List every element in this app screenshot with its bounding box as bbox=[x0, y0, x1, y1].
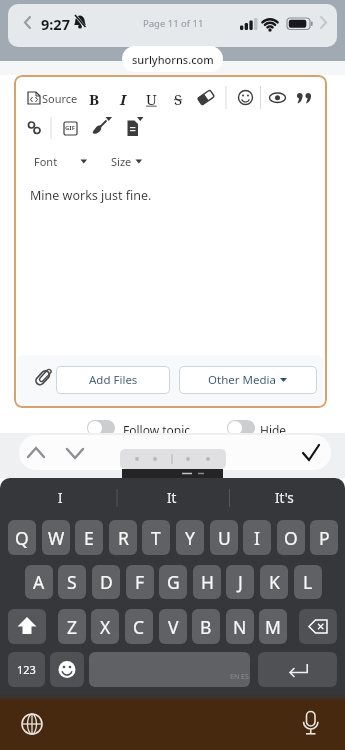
staticText: U bbox=[218, 526, 231, 550]
staticText: 123 bbox=[17, 662, 36, 677]
staticText: B bbox=[200, 615, 212, 639]
button[interactable] bbox=[23, 441, 89, 465]
staticText: Hide bbox=[260, 422, 287, 438]
button[interactable] bbox=[296, 707, 326, 737]
button[interactable]: Z bbox=[58, 609, 86, 644]
staticText: Follow topic bbox=[123, 422, 191, 438]
staticText: 9:27 bbox=[41, 14, 70, 34]
staticText: I bbox=[58, 489, 63, 507]
staticText: Add Files bbox=[89, 372, 138, 388]
button[interactable] bbox=[194, 84, 220, 111]
staticText: R bbox=[118, 526, 129, 550]
staticText: Source bbox=[42, 91, 78, 106]
staticText: It's bbox=[275, 489, 294, 507]
staticText: Other Media bbox=[208, 372, 276, 388]
button[interactable] bbox=[116, 84, 142, 111]
staticText: surlyhorns.com bbox=[132, 52, 214, 67]
staticText: C bbox=[133, 615, 145, 639]
button[interactable]: 123 bbox=[8, 652, 45, 687]
staticText: S bbox=[174, 89, 183, 109]
staticText: L bbox=[303, 570, 313, 594]
staticText: It bbox=[167, 489, 177, 507]
button[interactable]: F bbox=[126, 565, 154, 599]
staticText: Y bbox=[185, 526, 195, 550]
button[interactable]: T bbox=[142, 520, 170, 555]
button[interactable]: J bbox=[226, 565, 254, 599]
button[interactable] bbox=[88, 115, 114, 141]
button[interactable]: Add Files bbox=[56, 366, 170, 394]
staticText: E bbox=[84, 526, 94, 550]
button[interactable]: E bbox=[75, 520, 103, 555]
button[interactable]: R bbox=[109, 520, 137, 555]
button[interactable]: I bbox=[243, 520, 271, 555]
staticText: A bbox=[33, 570, 45, 594]
button[interactable] bbox=[87, 420, 115, 436]
staticText: D bbox=[100, 570, 113, 594]
button[interactable] bbox=[292, 84, 319, 111]
button[interactable]: G bbox=[159, 565, 187, 599]
button[interactable] bbox=[50, 652, 84, 687]
button[interactable] bbox=[17, 709, 47, 739]
button[interactable] bbox=[265, 84, 291, 111]
staticText: Font bbox=[34, 154, 58, 169]
button[interactable]: X bbox=[91, 609, 119, 644]
button[interactable] bbox=[58, 115, 84, 141]
button[interactable]: H bbox=[193, 565, 221, 599]
button[interactable]: P bbox=[310, 520, 338, 555]
staticText: W bbox=[48, 526, 65, 550]
button[interactable] bbox=[258, 652, 337, 687]
button[interactable] bbox=[168, 84, 194, 111]
staticText: G bbox=[167, 570, 180, 594]
button[interactable]: M bbox=[259, 609, 287, 644]
button[interactable] bbox=[295, 439, 327, 467]
staticText: O bbox=[284, 526, 298, 550]
button[interactable]: V bbox=[159, 609, 187, 644]
button[interactable]: EN ES bbox=[89, 652, 250, 687]
staticText: X bbox=[100, 615, 111, 639]
button[interactable] bbox=[8, 609, 46, 644]
button[interactable] bbox=[232, 84, 259, 111]
staticText: M bbox=[265, 615, 281, 639]
button[interactable]: L bbox=[294, 565, 322, 599]
staticText: GIF bbox=[65, 124, 75, 132]
button[interactable] bbox=[299, 609, 337, 644]
staticText: B bbox=[89, 89, 100, 109]
button[interactable] bbox=[24, 115, 50, 141]
staticText: T bbox=[151, 526, 161, 550]
button[interactable]: A bbox=[25, 565, 53, 599]
button[interactable]: B bbox=[192, 609, 220, 644]
staticText: N bbox=[233, 615, 247, 639]
button[interactable]: K bbox=[260, 565, 288, 599]
staticText: H bbox=[201, 570, 214, 594]
button[interactable] bbox=[28, 149, 90, 173]
button[interactable] bbox=[26, 84, 90, 111]
button[interactable]: S bbox=[58, 565, 86, 599]
staticText: Page 11 of 11 bbox=[143, 17, 204, 30]
staticText: Z bbox=[67, 615, 78, 639]
staticText: U bbox=[146, 89, 157, 109]
staticText: P bbox=[319, 526, 330, 550]
button[interactable]: D bbox=[92, 565, 120, 599]
button[interactable]: C bbox=[125, 609, 153, 644]
button[interactable]: surlyhorns.com bbox=[122, 46, 223, 72]
button[interactable] bbox=[227, 420, 255, 436]
staticText: I bbox=[254, 526, 260, 550]
staticText: K bbox=[269, 570, 280, 594]
staticText: Size bbox=[111, 154, 132, 169]
button[interactable] bbox=[122, 115, 148, 141]
button[interactable]: Q bbox=[8, 520, 36, 555]
button[interactable]: O bbox=[277, 520, 305, 555]
staticText: F bbox=[135, 570, 145, 594]
staticText: V bbox=[168, 615, 179, 639]
button[interactable]: W bbox=[42, 520, 70, 555]
staticText: Q bbox=[15, 526, 29, 550]
button[interactable]: N bbox=[226, 609, 254, 644]
button[interactable]: Y bbox=[176, 520, 204, 555]
button[interactable] bbox=[142, 84, 168, 111]
button[interactable]: Other Media bbox=[179, 366, 317, 394]
button[interactable]: U bbox=[210, 520, 238, 555]
staticText: J bbox=[238, 570, 243, 594]
button[interactable] bbox=[90, 84, 116, 111]
button[interactable] bbox=[106, 149, 146, 173]
staticText: I bbox=[120, 89, 127, 109]
